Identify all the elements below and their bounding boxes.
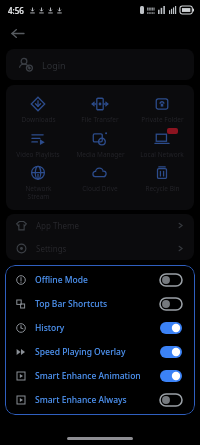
button[interactable]: Speed Playing Overlay: [6, 340, 194, 364]
staticText: Private Folder: [141, 115, 184, 124]
staticText: Local Network: [140, 150, 184, 159]
staticText: Speed Playing Overlay: [35, 346, 126, 358]
button[interactable]: Back: [6, 22, 28, 44]
button[interactable]: Off: [160, 298, 182, 310]
button[interactable]: Cloud Drive: [70, 162, 130, 194]
staticText: Cloud Drive: [82, 184, 118, 193]
staticText: Smart Enhance Animation: [35, 370, 141, 382]
staticText: Offline Mode: [35, 274, 88, 286]
button[interactable]: Recycle Bin: [132, 162, 192, 194]
button[interactable]: Private Folder: [132, 93, 192, 125]
button[interactable]: Network Stream: [8, 162, 68, 202]
staticText: Top Bar Shortcuts: [35, 298, 108, 310]
button[interactable]: Smart Enhance Animation: [6, 364, 194, 388]
button[interactable]: Media Manager: [70, 128, 130, 160]
staticText: App Theme: [36, 220, 79, 231]
button[interactable]: File Transfer: [70, 93, 130, 125]
button[interactable]: Offline Mode: [6, 268, 194, 292]
staticText: Login: [42, 59, 66, 71]
button[interactable]: On: [160, 346, 182, 358]
button[interactable]: Off: [160, 394, 182, 406]
staticText: History: [35, 322, 65, 334]
staticText: Downloads: [21, 115, 56, 124]
button[interactable]: On: [160, 370, 182, 382]
staticText: Media Manager: [76, 150, 125, 159]
staticText: Smart Enhance Always: [35, 394, 127, 406]
button[interactable]: Downloads: [8, 93, 68, 125]
button[interactable]: App Theme: [6, 214, 194, 237]
staticText: 4:56: [8, 5, 24, 16]
button[interactable]: On: [160, 322, 182, 334]
button[interactable]: Settings: [6, 237, 194, 260]
button[interactable]: Smart Enhance Always: [6, 388, 194, 412]
button[interactable]: Login: [6, 49, 194, 80]
staticText: Settings: [36, 243, 67, 254]
button[interactable]: History: [6, 316, 194, 340]
button[interactable]: Local Network: [132, 128, 192, 160]
button[interactable]: Top Bar Shortcuts: [6, 292, 194, 316]
staticText: Network Stream: [25, 184, 52, 201]
staticText: Recycle Bin: [145, 184, 180, 193]
staticText: Video Playlists: [16, 150, 60, 159]
staticText: File Transfer: [81, 115, 119, 124]
button[interactable]: Video Playlists: [8, 128, 68, 160]
button[interactable]: Off: [160, 274, 182, 286]
